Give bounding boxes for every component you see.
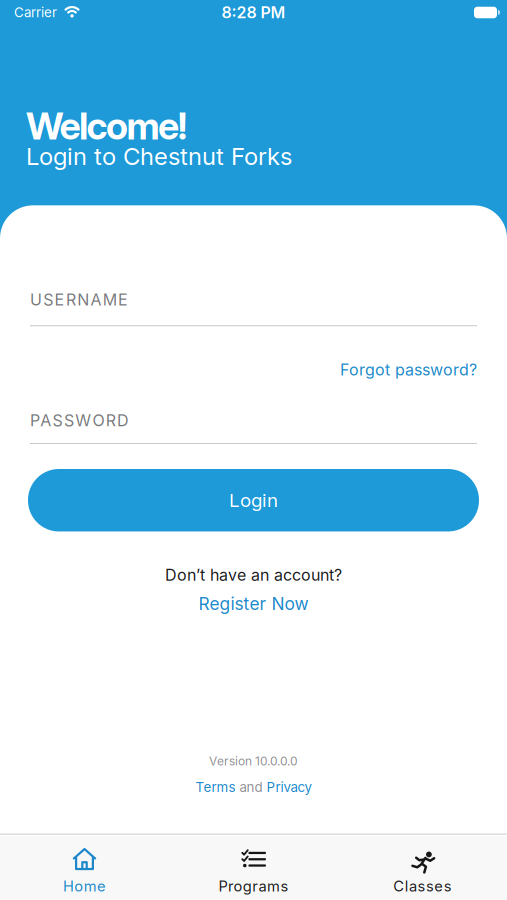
staticText: Register Now <box>198 593 308 614</box>
staticText: Programs <box>219 877 288 895</box>
button[interactable]: Terms <box>195 779 235 795</box>
staticText: Carrier <box>14 5 57 20</box>
staticText: 8:28 PM <box>221 3 285 22</box>
staticText: Classes <box>393 877 452 895</box>
staticText: and <box>239 779 262 795</box>
staticText: Login to Chestnut Forks <box>26 142 292 170</box>
staticText: PASSWORD <box>30 411 129 430</box>
button[interactable]: Login <box>28 469 479 531</box>
staticText: Version 10.0.0.0 <box>209 754 298 768</box>
staticText: USERNAME <box>30 290 128 309</box>
staticText: Login <box>229 489 278 511</box>
button[interactable]: Register Now <box>198 593 308 614</box>
button[interactable]: Programs <box>169 834 338 895</box>
staticText: Forgot password? <box>340 360 477 379</box>
staticText: Privacy <box>266 779 311 795</box>
button[interactable]: Privacy <box>266 779 311 795</box>
staticText: Don’t have an account? <box>165 565 342 584</box>
button[interactable]: Forgot password? <box>340 360 477 379</box>
button[interactable]: Home <box>0 834 169 895</box>
staticText: Terms <box>195 779 235 795</box>
staticText: Welcome! <box>26 104 187 148</box>
staticText: Home <box>63 877 106 895</box>
button[interactable]: Classes <box>338 834 507 895</box>
